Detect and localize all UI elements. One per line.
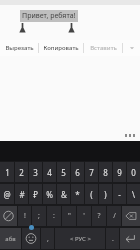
button[interactable]: 5 [57,162,70,182]
staticText: 3 [33,167,38,178]
button[interactable]: / [107,206,121,226]
button[interactable]: # [15,184,28,204]
button[interactable]: ? [92,206,106,226]
staticText: Вырезать [5,44,34,52]
button[interactable]: \ [127,184,140,204]
staticText: @ [3,189,11,200]
button[interactable]: ! [18,206,31,226]
button[interactable]: . [106,228,119,249]
button[interactable]: ' [77,206,91,226]
button[interactable]: 1 [0,162,14,182]
staticText: 0 [131,167,136,178]
staticText: Привет, ребята! [22,11,76,21]
staticText: 5 [61,167,66,178]
staticText: ₽ [33,189,38,200]
button[interactable]: & [57,184,70,204]
button[interactable]: 4 [43,162,56,182]
staticText: ' [83,211,85,221]
button[interactable]: Menu [123,132,137,139]
staticText: ? [97,211,101,221]
button[interactable]: < РУС > [55,228,105,249]
staticText: 4 [47,167,52,178]
staticText: Вставить [90,44,117,52]
button[interactable]: % [43,184,56,204]
button[interactable]: : [47,206,61,226]
button[interactable]: Привет, ребята! [22,11,76,21]
staticText: . [112,234,114,244]
staticText: 2 [19,167,24,178]
button[interactable]: ; [32,206,46,226]
button[interactable]: Backspace [122,206,140,226]
button[interactable]: Копировать [39,40,83,56]
button[interactable]: Symbols [0,206,17,226]
staticText: \ [132,189,135,200]
staticText: * [75,189,80,200]
button[interactable]: 0 [127,162,140,182]
staticText: 1 [5,167,10,178]
button[interactable]: 8 [99,162,112,182]
staticText: " [68,211,71,221]
button[interactable]: More options [123,40,140,56]
staticText: ! [24,211,26,221]
button[interactable]: , [41,228,54,249]
button[interactable]: Вставить [84,40,122,56]
staticText: , [47,234,49,244]
button[interactable]: Enter [120,228,140,249]
button[interactable]: Emoji [22,228,40,249]
button[interactable]: абв [0,228,21,249]
button[interactable]: ( [85,184,98,204]
button[interactable]: ₽ [29,184,42,204]
staticText: & [61,189,67,200]
button[interactable]: * [71,184,84,204]
staticText: # [19,189,25,200]
button[interactable]: 6 [71,162,84,182]
staticText: - [118,189,121,200]
button[interactable]: @ [0,184,14,204]
staticText: 8 [103,167,108,178]
button[interactable]: ) [99,184,112,204]
button[interactable]: 3 [29,162,42,182]
staticText: : [53,211,55,221]
button[interactable]: Вырезать [0,40,38,56]
button[interactable]: 2 [15,162,28,182]
staticText: абв [5,235,16,243]
staticText: 7 [89,167,94,178]
button[interactable]: 7 [85,162,98,182]
button[interactable]: " [62,206,76,226]
staticText: / [113,211,116,221]
button[interactable]: Selection start handle [19,23,26,33]
button[interactable]: 9 [113,162,126,182]
staticText: % [46,189,53,200]
staticText: < РУС > [70,235,91,243]
staticText: 6 [75,167,80,178]
staticText: ; [38,211,40,221]
button[interactable]: Selection end handle [68,23,75,33]
staticText: 9 [117,167,122,178]
staticText: ( [90,189,93,200]
staticText: Копировать [43,44,79,52]
staticText: ) [104,189,107,200]
button[interactable]: - [113,184,126,204]
